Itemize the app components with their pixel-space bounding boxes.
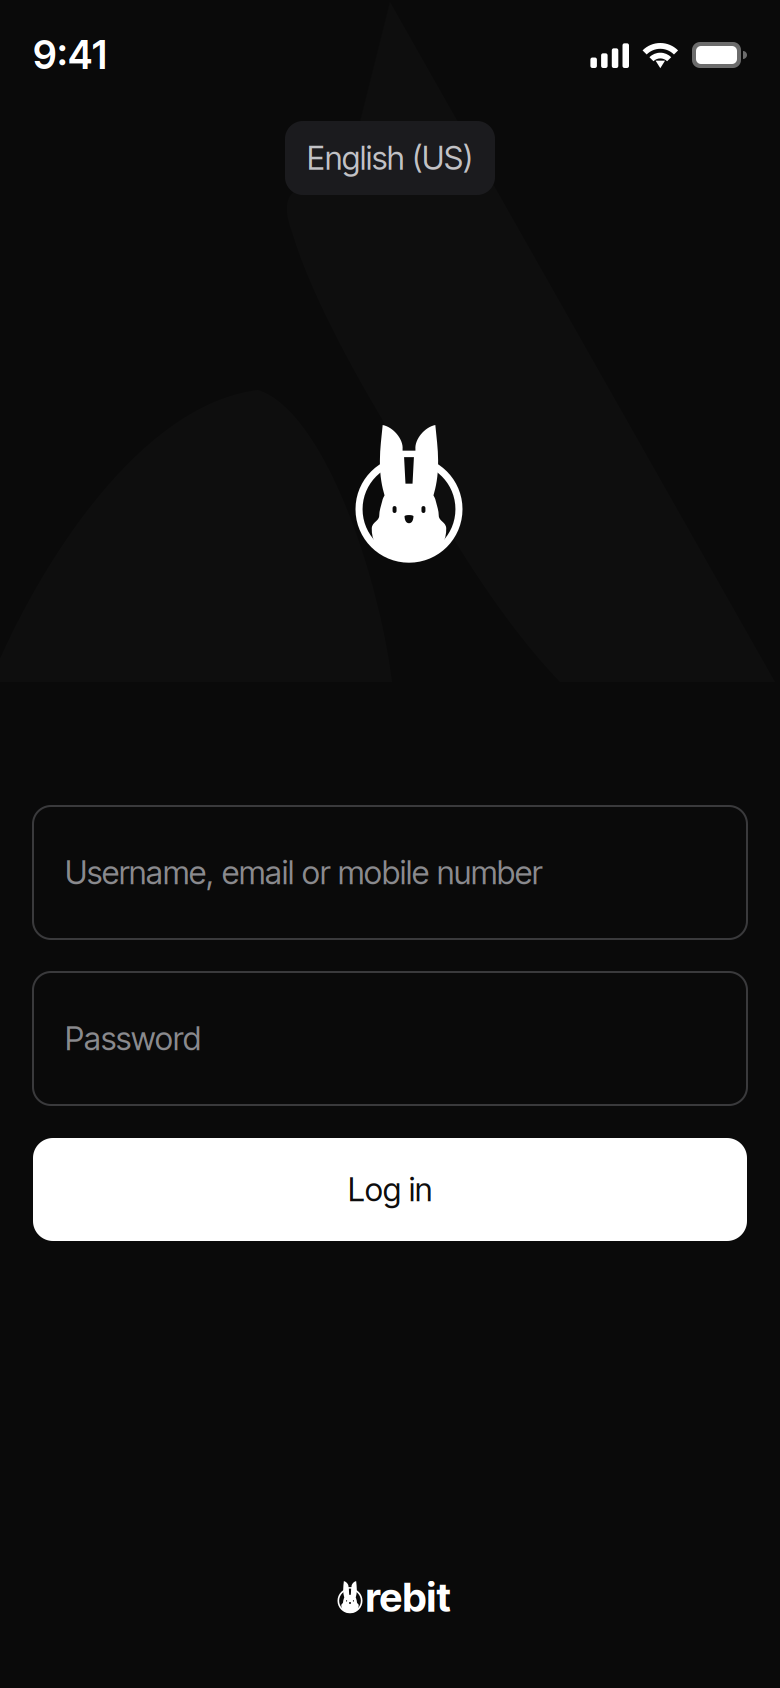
- button[interactable]: Username, email or mobile number: [33, 806, 747, 939]
- staticText: Password: [65, 1019, 201, 1058]
- button[interactable]: Log in: [33, 1138, 747, 1241]
- staticText: 9:41: [33, 32, 107, 78]
- staticText: rebit: [365, 1573, 450, 1621]
- button[interactable]: Password: [33, 972, 747, 1105]
- staticText: Log in: [348, 1170, 432, 1209]
- staticText: English (US): [307, 139, 473, 177]
- staticText: Username, email or mobile number: [65, 853, 542, 892]
- button[interactable]: English (US): [285, 121, 495, 195]
